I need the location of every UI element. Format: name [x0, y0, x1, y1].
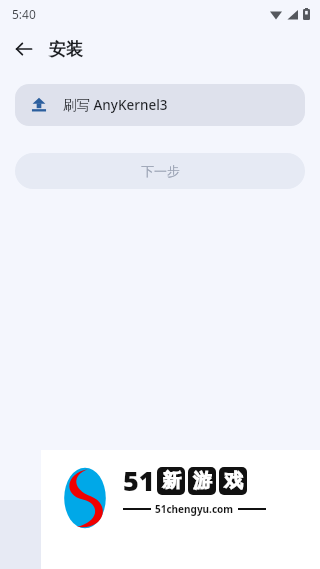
staticText: 下一步 [141, 163, 180, 179]
staticText: 刷写 AnyKernel3 [63, 96, 168, 114]
button[interactable]: Back [8, 33, 40, 65]
staticText: 51chengyu.com [155, 502, 234, 516]
staticText: 5:40 [12, 6, 36, 22]
staticText: 新 [162, 469, 181, 493]
staticText: 游 [193, 469, 212, 493]
staticText: 安装 [49, 39, 83, 60]
button[interactable]: 下一步 [15, 153, 305, 189]
button[interactable]: 刷写 AnyKernel3 [15, 84, 305, 126]
staticText: 51 [123, 462, 155, 499]
staticText: 戏 [224, 469, 243, 493]
